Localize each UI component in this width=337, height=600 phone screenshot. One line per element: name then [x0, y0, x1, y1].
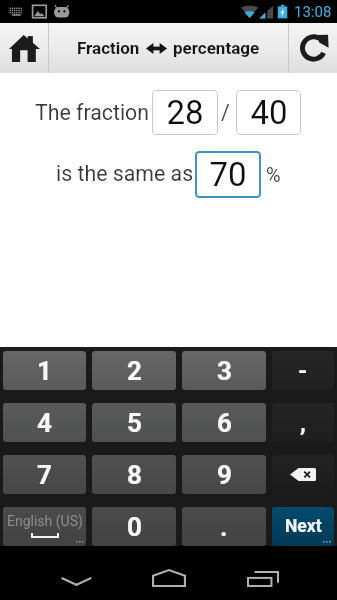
button[interactable]: 0	[92, 507, 176, 546]
staticText: 28	[166, 93, 204, 132]
button[interactable]: 40	[236, 90, 301, 135]
staticText: 40	[250, 93, 288, 132]
staticText: 2	[127, 356, 142, 386]
staticText: 3	[217, 356, 232, 386]
staticText: 1	[37, 356, 52, 386]
staticText: Fraction	[77, 38, 140, 58]
staticText: 0	[127, 512, 142, 542]
button[interactable]: 3	[182, 351, 266, 390]
button[interactable]: Home	[0, 23, 48, 73]
staticText: ,	[300, 409, 306, 437]
staticText: 4	[37, 408, 52, 438]
staticText: 70	[209, 155, 247, 194]
button[interactable]: ,	[272, 403, 334, 442]
button[interactable]: 70	[195, 151, 261, 198]
button[interactable]: 2	[92, 351, 176, 390]
staticText: .	[220, 512, 228, 542]
button[interactable]: English (US)	[3, 507, 86, 546]
button[interactable]: Recent apps	[239, 558, 287, 600]
staticText: %	[266, 163, 281, 186]
staticText: 6	[217, 408, 232, 438]
button[interactable]: 6	[182, 403, 266, 442]
staticText: 5	[127, 408, 142, 438]
staticText: 13:08	[294, 3, 332, 21]
staticText: /	[221, 100, 230, 125]
staticText: is the same as	[56, 161, 194, 186]
button[interactable]: .	[182, 507, 266, 546]
button[interactable]: 28	[152, 90, 218, 135]
button[interactable]: Home	[145, 556, 193, 600]
button[interactable]: -	[272, 351, 334, 390]
button[interactable]: 8	[92, 455, 176, 494]
button[interactable]: 5	[92, 403, 176, 442]
button[interactable]: Backspace	[272, 455, 334, 494]
staticText: Next	[285, 516, 322, 537]
button[interactable]: 9	[182, 455, 266, 494]
staticText: 7	[37, 460, 52, 490]
button[interactable]: 1	[3, 351, 86, 390]
staticText: -	[298, 357, 308, 385]
button[interactable]: Hide keyboard	[52, 563, 100, 599]
button[interactable]: Refresh	[289, 23, 337, 73]
button[interactable]: 7	[3, 455, 86, 494]
staticText: English (US)	[7, 513, 83, 529]
staticText: 9	[217, 460, 232, 490]
staticText: 8	[127, 460, 142, 490]
staticText: percentage	[173, 38, 260, 58]
button[interactable]: Next	[272, 507, 334, 546]
staticText: The fraction	[35, 100, 150, 125]
button[interactable]: 4	[3, 403, 86, 442]
